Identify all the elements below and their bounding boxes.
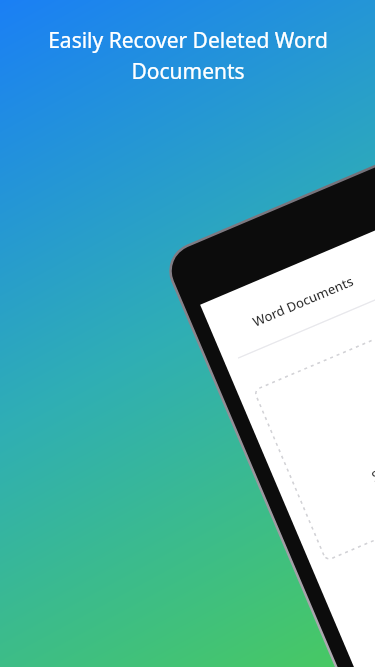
staticText: Easily Recover Deleted Word Documents: [48, 26, 328, 85]
button[interactable]: Phone preview showing Scan Documents: [0, 0, 375, 667]
